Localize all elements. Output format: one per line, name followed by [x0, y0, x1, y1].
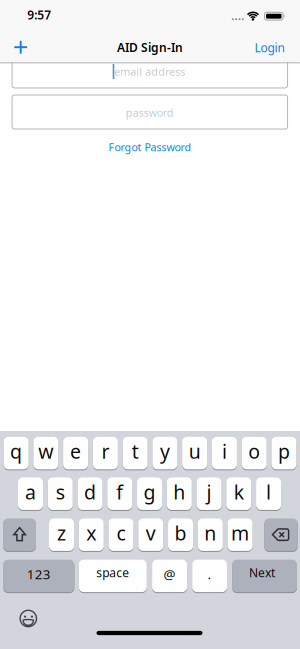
- staticText: w: [38, 438, 53, 464]
- staticText: v: [146, 520, 156, 546]
- button[interactable]: w: [33, 436, 58, 470]
- staticText: y: [160, 438, 170, 464]
- staticText: 9:57: [27, 7, 51, 23]
- staticText: Next: [249, 565, 275, 581]
- button[interactable]: Shift: [3, 518, 36, 551]
- button[interactable]: l: [256, 477, 281, 510]
- staticText: m: [231, 520, 249, 546]
- staticText: u: [189, 438, 201, 464]
- button[interactable]: n: [198, 518, 223, 551]
- button[interactable]: k: [226, 477, 251, 510]
- button[interactable]: v: [138, 518, 163, 551]
- button[interactable]: d: [77, 477, 102, 510]
- button[interactable]: s: [48, 477, 73, 510]
- button[interactable]: z: [49, 518, 74, 551]
- button[interactable]: 123: [3, 559, 74, 593]
- button[interactable]: b: [168, 518, 193, 551]
- staticText: t: [132, 438, 139, 464]
- staticText: AID Sign-In: [117, 39, 183, 55]
- staticText: Login: [254, 39, 284, 55]
- staticText: f: [116, 479, 123, 505]
- staticText: p: [278, 438, 290, 464]
- button[interactable]: m: [228, 518, 253, 551]
- button[interactable]: j: [197, 477, 222, 510]
- button[interactable]: Add: [6, 32, 36, 62]
- staticText: s: [56, 479, 65, 505]
- staticText: email address: [114, 65, 185, 79]
- staticText: password: [126, 105, 174, 120]
- button[interactable]: g: [137, 477, 162, 510]
- button[interactable]: Next: [232, 559, 297, 593]
- button[interactable]: u: [182, 436, 207, 470]
- staticText: b: [174, 520, 186, 546]
- button[interactable]: email address: [12, 54, 288, 88]
- button[interactable]: password: [12, 95, 288, 129]
- staticText: Forgot Password: [108, 140, 191, 154]
- button[interactable]: o: [242, 436, 267, 470]
- button[interactable]: p: [271, 436, 296, 470]
- staticText: .: [208, 565, 212, 583]
- button[interactable]: y: [152, 436, 177, 470]
- staticText: space: [96, 565, 129, 581]
- staticText: d: [84, 479, 96, 505]
- staticText: o: [248, 438, 260, 464]
- button[interactable]: space: [79, 559, 147, 593]
- staticText: c: [116, 520, 125, 546]
- button[interactable]: e: [63, 436, 88, 470]
- button[interactable]: c: [108, 518, 133, 551]
- button[interactable]: .: [192, 559, 227, 593]
- button[interactable]: Delete: [264, 518, 298, 551]
- button[interactable]: t: [123, 436, 148, 470]
- staticText: a: [25, 479, 36, 505]
- staticText: r: [101, 438, 109, 464]
- button[interactable]: i: [212, 436, 237, 470]
- button[interactable]: h: [167, 477, 192, 510]
- button[interactable]: q: [4, 436, 29, 470]
- button[interactable]: a: [18, 477, 43, 510]
- button[interactable]: @: [152, 559, 187, 593]
- staticText: g: [143, 479, 155, 505]
- staticText: l: [266, 479, 271, 505]
- button[interactable]: x: [79, 518, 104, 551]
- staticText: i: [222, 438, 227, 464]
- staticText: q: [10, 438, 22, 464]
- staticText: k: [234, 479, 244, 505]
- staticText: j: [207, 479, 212, 505]
- button[interactable]: Forgot Password: [100, 139, 200, 155]
- staticText: 123: [27, 565, 51, 583]
- button[interactable]: r: [93, 436, 118, 470]
- staticText: n: [204, 520, 216, 546]
- button[interactable]: f: [107, 477, 132, 510]
- staticText: x: [86, 520, 96, 546]
- button[interactable]: Emoji: [16, 606, 40, 630]
- staticText: e: [70, 438, 81, 464]
- staticText: @: [164, 565, 176, 583]
- staticText: h: [173, 479, 185, 505]
- button[interactable]: Login: [249, 36, 289, 58]
- staticText: z: [57, 520, 66, 546]
